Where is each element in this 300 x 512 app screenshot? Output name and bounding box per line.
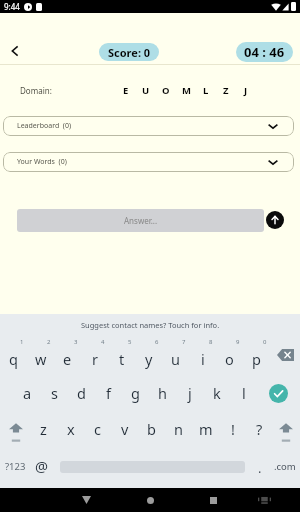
button[interactable]: Backspace [272,336,299,374]
button[interactable]: ? [246,410,273,447]
button[interactable]: e [54,336,81,374]
button[interactable]: w [27,336,54,374]
button[interactable]: h [149,374,176,411]
button[interactable]: Answer... [17,209,264,232]
button[interactable]: p [243,336,270,374]
button[interactable]: Recent apps [193,488,233,512]
staticText: h [158,383,167,403]
button[interactable]: ?123 [2,448,29,484]
button[interactable]: u [162,336,189,374]
button[interactable]: s [41,374,68,411]
staticText: U [142,84,150,97]
staticText: n [174,419,183,439]
staticText: 0 [263,338,267,346]
staticText: i [201,349,205,369]
staticText: ?123 [5,460,26,473]
button[interactable]: Score: 0 [99,43,159,61]
staticText: Suggest contact names? Touch for info. [81,320,220,330]
button[interactable]: j [176,374,203,411]
staticText: 1 [20,338,24,346]
button[interactable]: b [138,410,165,447]
staticText: O [162,84,170,97]
staticText: s [51,383,58,403]
button[interactable]: i [189,336,216,374]
button[interactable]: 04 : 46 [236,42,293,62]
button[interactable]: ! [219,410,246,447]
staticText: @ [35,456,49,476]
button[interactable]: f [95,374,122,411]
button[interactable]: Hide keyboard [249,488,279,512]
button[interactable]: Back [2,38,28,64]
button[interactable]: g [122,374,149,411]
staticText: Answer... [124,215,158,226]
staticText: 3 [74,338,78,346]
staticText: 8 [209,338,213,346]
button[interactable]: Your Words (0) [3,152,294,172]
button[interactable]: l [230,374,257,411]
staticText: 9 [236,338,240,346]
staticText: t [119,349,125,369]
staticText: l [242,383,246,403]
staticText: .com [274,460,296,473]
staticText: g [131,383,140,403]
staticText: 04 : 46 [244,43,285,61]
button[interactable]: v [111,410,138,447]
staticText: c [94,419,101,439]
button[interactable]: y [135,336,162,374]
staticText: f [106,383,111,403]
button[interactable]: z [30,410,57,447]
button[interactable]: Back [66,488,106,512]
button[interactable]: o [216,336,243,374]
staticText: 4 [101,338,105,346]
staticText: J [244,84,248,97]
staticText: q [9,349,18,369]
button[interactable]: Shift [272,412,299,450]
staticText: Leaderboard (0) [17,121,72,131]
staticText: k [213,383,221,403]
button[interactable]: @ [28,448,55,484]
staticText: 6 [155,338,159,346]
button[interactable]: k [203,374,230,411]
staticText: ! [231,419,235,439]
staticText: . [258,459,262,477]
staticText: 9:44 [4,1,20,12]
button[interactable]: c [84,410,111,447]
staticText: E [123,84,129,97]
button[interactable]: m [192,410,219,447]
button[interactable]: Submit answer [266,211,284,229]
button[interactable]: .com [269,448,300,484]
staticText: w [35,349,47,369]
staticText: d [77,383,86,403]
button[interactable]: Home [130,488,170,512]
button[interactable]: d [68,374,95,411]
staticText: r [92,349,98,369]
staticText: L [203,84,209,97]
button[interactable]: a [14,374,41,411]
button[interactable]: q [0,336,27,374]
button[interactable]: x [57,410,84,447]
staticText: o [225,349,234,369]
staticText: z [40,419,47,439]
staticText: y [145,349,153,369]
staticText: x [67,419,75,439]
button[interactable]: n [165,410,192,447]
staticText: u [171,349,180,369]
staticText: a [23,383,32,403]
staticText: Domain: [20,85,52,96]
button[interactable]: . [246,450,273,486]
staticText: e [63,349,72,369]
staticText: 5 [128,338,132,346]
button[interactable]: Shift [2,412,29,450]
staticText: j [188,383,192,403]
staticText: b [147,419,156,439]
button[interactable]: r [81,336,108,374]
staticText: 2 [47,338,51,346]
staticText: p [252,349,261,369]
staticText: ? [256,419,263,439]
button[interactable]: Leaderboard (0) [3,116,294,136]
staticText: v [121,419,129,439]
button[interactable]: Enter [269,384,288,403]
staticText: Score: 0 [108,45,151,60]
button[interactable]: t [108,336,135,374]
